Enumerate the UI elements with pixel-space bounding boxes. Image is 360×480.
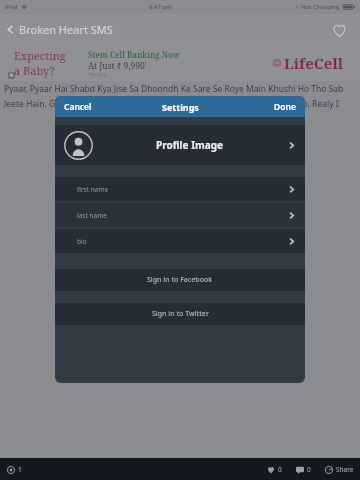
other: Share xyxy=(325,466,333,474)
staticText: Not Charging xyxy=(301,3,340,11)
button[interactable]: Profile Image xyxy=(55,125,305,165)
staticText: Settings xyxy=(162,101,199,113)
staticText: Done xyxy=(274,101,296,113)
button[interactable]: Favorite xyxy=(328,19,350,41)
button[interactable]: Views xyxy=(7,465,22,474)
button[interactable]: Close ad xyxy=(8,72,15,79)
button[interactable]: bio xyxy=(55,229,305,253)
other: Views xyxy=(7,466,15,474)
staticText: bio xyxy=(77,237,87,246)
button[interactable]: Done xyxy=(274,96,296,117)
staticText: LifeCell xyxy=(284,53,343,73)
staticText: *T&C apply xyxy=(88,72,107,77)
button[interactable]: Like xyxy=(267,465,282,474)
button[interactable]: Sign in to Twitter xyxy=(55,303,305,325)
button[interactable]: Comments xyxy=(296,465,311,474)
staticText: ˜ xyxy=(343,60,346,67)
staticText: Broken Heart SMS xyxy=(19,22,113,37)
button[interactable]: Share xyxy=(325,465,354,474)
staticText: first name xyxy=(77,185,109,194)
staticText: 6:47 pm xyxy=(149,3,172,11)
button[interactable]: Expecting xyxy=(0,45,360,81)
staticText: Jeete Hain, Gham Ke Sath Koi Nahi Rota H… xyxy=(4,98,339,110)
button[interactable]: Back xyxy=(5,22,113,37)
button[interactable]: first name xyxy=(55,177,305,201)
staticText: Profile Image xyxy=(156,138,224,152)
staticText: Sign in to Twitter xyxy=(152,309,209,319)
staticText: 0 xyxy=(307,465,311,474)
staticText: Sign in to Facebook xyxy=(147,275,213,285)
button[interactable]: Sign in to Facebook xyxy=(55,269,305,291)
button[interactable]: Cancel xyxy=(64,96,92,117)
staticText: 1 xyxy=(18,465,22,474)
staticText: ⚡ xyxy=(295,4,299,10)
staticText: 0 xyxy=(278,465,282,474)
other: Comments xyxy=(296,466,304,474)
staticText: × xyxy=(10,72,13,79)
other: Back xyxy=(5,24,16,35)
staticText: Expecting xyxy=(14,48,66,63)
staticText: Share xyxy=(336,465,354,474)
button[interactable]: last name xyxy=(55,203,305,227)
staticText: Cancel xyxy=(64,101,92,113)
staticText: Stem Cell Banking Now xyxy=(88,49,180,60)
staticText: last name xyxy=(77,211,107,220)
staticText: At Just ₹ 9,990˙ xyxy=(88,60,147,72)
staticText: a Baby? xyxy=(14,63,55,78)
staticText: Pyaar, Pyaar Hai Shabd Kya Jise Sa Dhoon… xyxy=(4,83,344,95)
other: Like xyxy=(267,466,275,474)
staticText: iPad xyxy=(5,3,18,11)
